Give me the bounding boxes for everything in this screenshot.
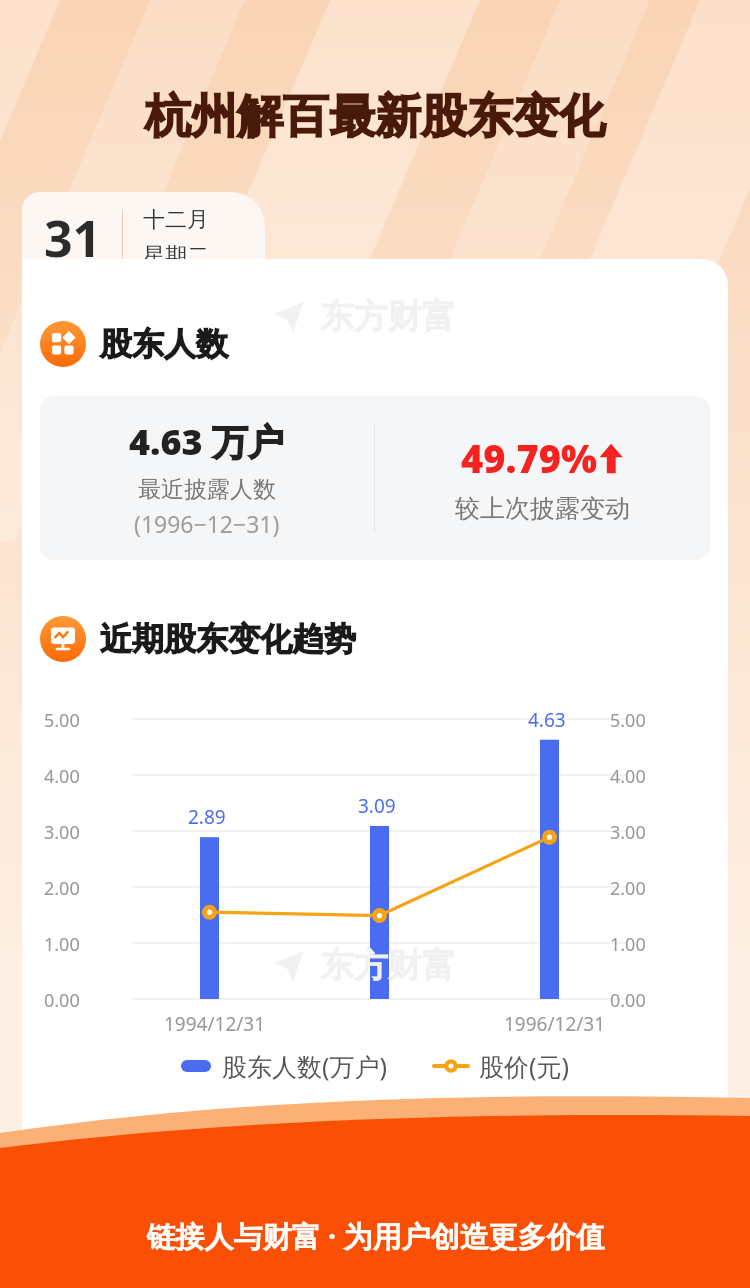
staticText: 2.00 [610, 876, 646, 901]
staticText: 3.00 [610, 820, 646, 845]
staticText: 3.00 [44, 820, 80, 845]
staticText: (1996−12−31) [134, 508, 280, 539]
staticText: 最近披露人数 [138, 475, 276, 504]
staticText: 0.00 [610, 988, 646, 1013]
staticText: 1994/12/31 [164, 1011, 266, 1037]
button[interactable]: 4.63 万户 [40, 396, 710, 560]
staticText: 十二月 [143, 206, 209, 234]
staticText: 股价(元) [479, 1049, 570, 1083]
staticText: 杭州解百最新股东变化 [0, 88, 750, 146]
staticText: 股东人数(万户) [222, 1049, 388, 1083]
staticText: 东方财富 [320, 944, 456, 987]
staticText: 较上次披露变动 [455, 493, 630, 524]
staticText: 49.79% [461, 432, 598, 484]
staticText: 东方财富 [320, 295, 456, 338]
other: 股东人数 [40, 321, 86, 367]
staticText: 31 [44, 204, 102, 272]
button[interactable]: 股东人数 [40, 321, 228, 367]
staticText: 1996/12/31 [504, 1011, 606, 1037]
staticText: 2.00 [44, 876, 80, 901]
staticText: 2.89 [188, 804, 226, 830]
staticText: 5.00 [44, 708, 80, 733]
staticText: 4.00 [610, 764, 646, 789]
staticText: 3.09 [358, 793, 396, 819]
button[interactable]: 近期股东变化趋势 [40, 616, 356, 662]
button[interactable]: 31 [22, 192, 265, 284]
staticText: 1.00 [610, 932, 646, 957]
staticText: 0.00 [44, 988, 80, 1013]
staticText: 4.00 [44, 764, 80, 789]
staticText: 1.00 [44, 932, 80, 957]
other: 近期股东变化趋势 [40, 616, 86, 662]
staticText: 链接人与财富 · 为用户创造更多价值 [146, 1216, 605, 1256]
button[interactable]: 股东人数(万户) [181, 1049, 388, 1083]
staticText: 股东人数 [100, 324, 228, 364]
staticText: 星期二 [143, 242, 209, 270]
staticText: 4.63 [528, 707, 566, 733]
staticText: 5.00 [610, 708, 646, 733]
button[interactable]: 股价(元) [434, 1049, 570, 1083]
staticText: 近期股东变化趋势 [100, 619, 356, 659]
staticText: 4.63 万户 [129, 417, 285, 466]
